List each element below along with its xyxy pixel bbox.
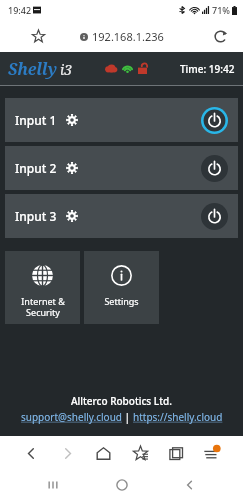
button[interactable]: Reload	[209, 25, 231, 47]
button[interactable]: Input 2 settings	[63, 159, 81, 177]
button[interactable]: Forward	[54, 440, 80, 466]
button[interactable]: Input 3	[5, 194, 238, 238]
button[interactable]: Menu	[199, 440, 225, 466]
staticText: 19:42	[8, 4, 32, 16]
button[interactable]: Toggle Input 2	[201, 155, 228, 182]
button[interactable]: Back	[175, 470, 205, 500]
button[interactable]: Internet & Security	[5, 251, 80, 324]
button[interactable]: Input 2	[5, 146, 238, 190]
staticText: Shelly	[8, 58, 58, 80]
staticText: Input 2	[15, 160, 57, 176]
button[interactable]: Input 3 settings	[63, 207, 81, 225]
staticText: 192.168.1.236	[92, 29, 164, 44]
button[interactable]: Bookmark	[28, 26, 48, 46]
staticText: i3	[60, 60, 73, 79]
button[interactable]: Input 1 settings	[63, 111, 81, 129]
button[interactable]: Bookmarks	[127, 440, 153, 466]
button[interactable]: Home	[107, 470, 137, 500]
button[interactable]: Back	[18, 440, 44, 466]
staticText: Input 3	[15, 208, 57, 224]
staticText: 71%	[212, 4, 230, 16]
button[interactable]: https://shelly.cloud	[133, 410, 223, 424]
button[interactable]: Recents	[38, 470, 68, 500]
staticText: Time: 19:42	[180, 62, 235, 76]
button[interactable]: Toggle Input 3	[201, 203, 228, 230]
button[interactable]: Settings	[84, 251, 159, 324]
staticText: |	[122, 410, 133, 424]
button[interactable]: Input 1	[5, 98, 238, 142]
staticText: Internet & Security	[21, 295, 65, 318]
staticText: Input 1	[15, 112, 57, 128]
button[interactable]: Toggle Input 1	[201, 107, 228, 134]
staticText: Settings	[104, 295, 139, 307]
button[interactable]: Tabs	[163, 440, 189, 466]
button[interactable]: support@shelly.cloud	[21, 410, 122, 424]
button[interactable]: Home	[90, 440, 116, 466]
staticText: Allterco Robotics Ltd.	[71, 394, 172, 408]
